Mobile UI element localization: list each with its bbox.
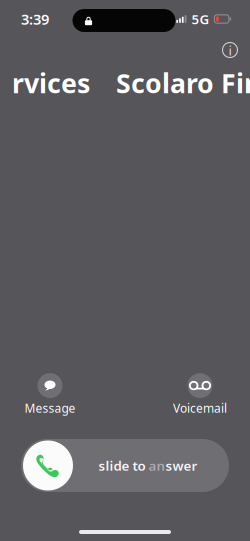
staticText: slide to [98, 457, 148, 474]
button[interactable]: Call info [216, 36, 244, 64]
staticText: Voicemail [173, 400, 227, 416]
button[interactable]: Slide to answer [21, 439, 229, 492]
button[interactable]: Message [5, 373, 95, 416]
staticText: an [148, 457, 165, 474]
staticText: 5G [191, 10, 209, 28]
staticText: 3:39 [21, 9, 49, 29]
staticText: rvices [12, 65, 90, 101]
staticText: i [228, 41, 231, 59]
staticText: Scolaro Finan [116, 65, 250, 101]
staticText: swer [165, 457, 197, 474]
staticText: Message [24, 400, 75, 416]
button[interactable]: Voicemail [155, 373, 245, 416]
